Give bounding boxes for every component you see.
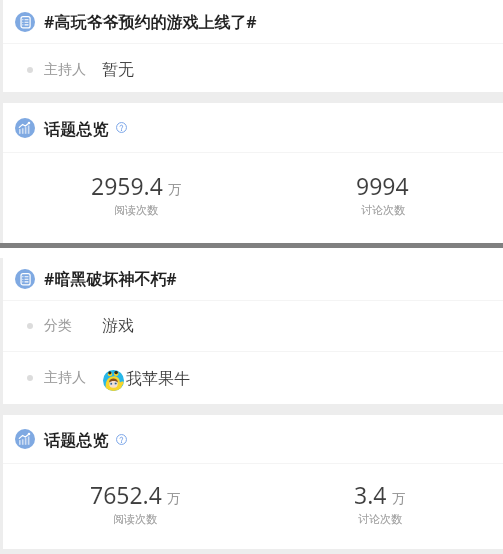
staticText: 游戏 [102, 316, 134, 336]
button[interactable]: #高玩爷爷预约的游戏上线了# [3, 0, 503, 43]
staticText: 讨论次数 [361, 203, 405, 217]
staticText: 主持人 [44, 369, 86, 387]
button[interactable]: 2959.4 [12, 170, 259, 217]
staticText: 话题总览 [44, 120, 108, 140]
staticText: 阅读次数 [113, 512, 157, 526]
staticText: 万 [392, 490, 405, 506]
button[interactable]: 9994 [259, 170, 503, 217]
button[interactable]: 分类 [3, 301, 503, 351]
staticText: 7652.4 [90, 479, 162, 510]
staticText: 我苹果牛 [126, 369, 190, 389]
staticText: 主持人 [44, 61, 86, 79]
button[interactable]: 7652.4 [13, 479, 257, 526]
staticText: 万 [167, 490, 180, 506]
button[interactable]: 主持人 [3, 352, 503, 404]
staticText: 阅读次数 [114, 203, 158, 217]
staticText: 讨论次数 [358, 512, 402, 526]
staticText: #高玩爷爷预约的游戏上线了# [44, 11, 257, 33]
staticText: 3.4 [354, 479, 387, 510]
staticText: #暗黑破坏神不朽# [44, 268, 177, 290]
staticText: 暂无 [102, 60, 134, 80]
button[interactable]: #暗黑破坏神不朽# [3, 258, 503, 300]
button[interactable]: 主持人 [3, 44, 503, 92]
button[interactable]: 话题总览 [3, 103, 503, 152]
staticText: 9994 [356, 170, 409, 201]
staticText: 2959.4 [91, 170, 163, 201]
staticText: 话题总览 [44, 431, 108, 451]
staticText: 万 [168, 181, 181, 197]
staticText: 分类 [44, 317, 72, 335]
button[interactable]: 话题总览 [3, 415, 503, 463]
button[interactable]: 3.4 [257, 479, 502, 526]
